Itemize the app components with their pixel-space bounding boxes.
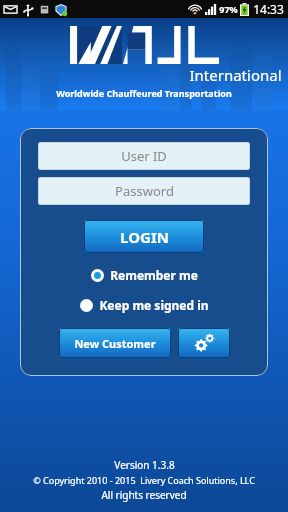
- button[interactable]: Password: [38, 177, 250, 205]
- staticText: © Copyright 2010 - 2015 Livery Coach Sol…: [33, 474, 255, 486]
- staticText: 14:33: [253, 1, 284, 17]
- button[interactable]: User ID: [38, 142, 250, 170]
- staticText: International: [189, 65, 282, 85]
- button[interactable]: Remember me: [89, 266, 200, 284]
- staticText: New Customer: [74, 336, 156, 351]
- button[interactable]: Keep me signed in: [78, 296, 211, 314]
- staticText: Keep me signed in: [99, 297, 209, 313]
- button[interactable]: New Customer: [59, 328, 171, 358]
- button[interactable]: Settings: [178, 328, 230, 358]
- button[interactable]: LOGIN: [84, 220, 204, 253]
- staticText: Version 1.3.8: [114, 458, 175, 472]
- staticText: 97%: [219, 3, 238, 15]
- staticText: LOGIN: [120, 227, 169, 247]
- staticText: User ID: [121, 147, 167, 165]
- staticText: Password: [115, 182, 174, 200]
- staticText: Remember me: [110, 267, 198, 283]
- staticText: Worldwide Chauffeured Transportation: [56, 87, 232, 99]
- staticText: All rights reserved: [101, 488, 187, 502]
